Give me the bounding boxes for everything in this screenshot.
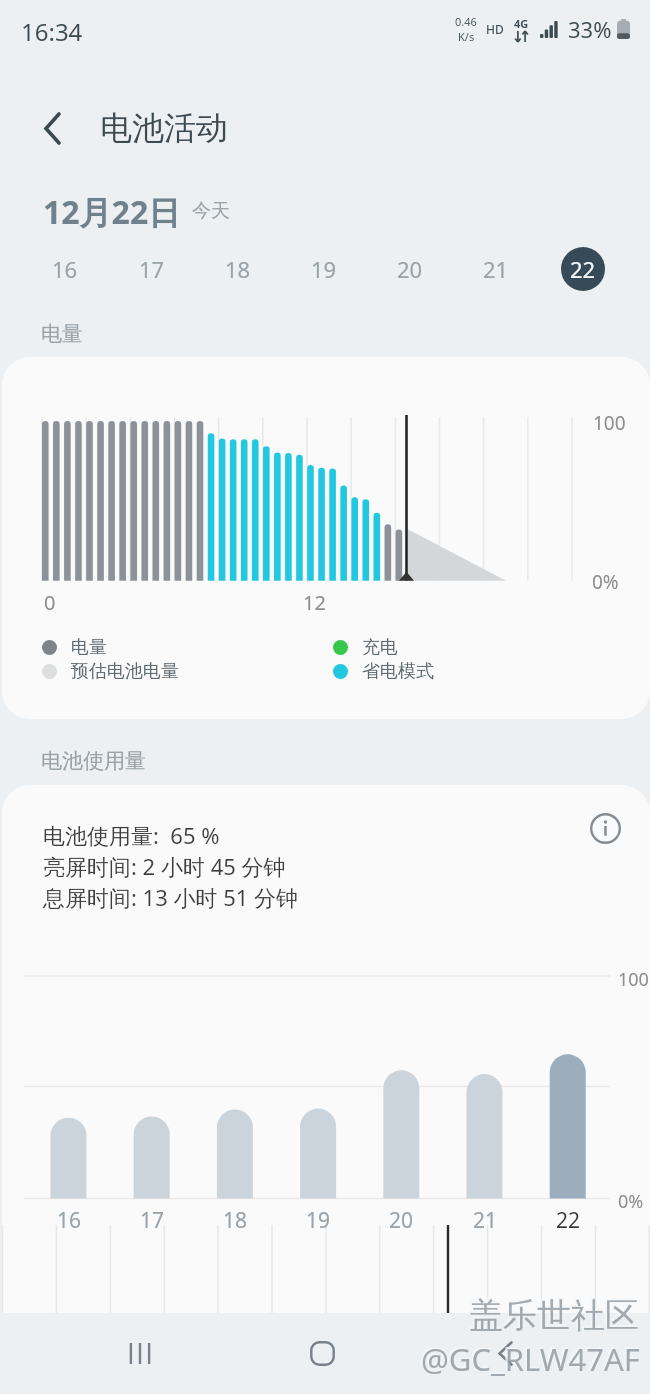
staticText: 20 <box>389 1206 414 1235</box>
staticText: 12 <box>303 589 326 616</box>
staticText: 今天 <box>192 199 230 223</box>
staticText: K/s <box>458 29 475 44</box>
staticText: 电池使用量 <box>41 748 146 774</box>
staticText: 100 <box>618 967 649 992</box>
staticText: 19 <box>306 1206 331 1235</box>
button[interactable]: 16 <box>43 247 87 291</box>
staticText: 盖乐世社区 <box>469 1294 639 1337</box>
staticText: 17 <box>139 254 165 284</box>
staticText: 18 <box>223 1206 248 1235</box>
staticText: 16 <box>57 1206 82 1235</box>
staticText: 0% <box>618 1189 644 1214</box>
staticText: 息屏时间: 13 小时 51 分钟 <box>43 882 299 912</box>
staticText: 12月22日 <box>43 190 181 234</box>
button[interactable]: 20 <box>388 247 432 291</box>
staticText: 18 <box>225 254 251 284</box>
button[interactable]: 18 <box>216 247 260 291</box>
button[interactable]: 17 <box>130 247 174 291</box>
button[interactable]: 22 <box>561 247 605 291</box>
staticText: 电量 <box>71 636 107 659</box>
button[interactable]: Back <box>28 104 76 152</box>
staticText: 电池活动 <box>100 108 228 148</box>
staticText: 19 <box>311 254 337 284</box>
staticText: 0.46 <box>455 14 477 29</box>
staticText: 电池使用量: 65 % <box>43 820 220 850</box>
staticText: 电量 <box>41 321 83 347</box>
staticText: 20 <box>397 254 423 284</box>
staticText: 16 <box>52 254 78 284</box>
staticText: 0 <box>44 589 56 616</box>
staticText: 22 <box>556 1206 581 1235</box>
button[interactable]: 19 <box>302 247 346 291</box>
staticText: 21 <box>483 254 509 284</box>
staticText: 22 <box>570 254 596 284</box>
staticText: 16:34 <box>21 15 83 48</box>
staticText: @GC_RLW47AF <box>419 1336 638 1378</box>
button[interactable]: Home <box>282 1313 362 1394</box>
staticText: HD <box>486 21 504 37</box>
staticText: 17 <box>140 1206 165 1235</box>
staticText: 33% <box>568 14 612 44</box>
staticText: 预估电池电量 <box>71 660 179 683</box>
staticText: 省电模式 <box>362 660 434 683</box>
button[interactable]: Recents <box>100 1313 180 1394</box>
button[interactable]: Back <box>465 1313 545 1394</box>
button[interactable]: 21 <box>474 247 518 291</box>
staticText: 0% <box>592 569 619 595</box>
staticText: @GC_RLW47AF <box>421 1338 640 1380</box>
staticText: 充电 <box>362 636 398 659</box>
button[interactable]: Info <box>583 806 627 850</box>
staticText: 100 <box>593 410 626 436</box>
staticText: 亮屏时间: 2 小时 45 分钟 <box>43 851 286 881</box>
staticText: 21 <box>473 1206 498 1235</box>
staticText: 盖乐世社区 <box>467 1292 637 1335</box>
staticText: 4G <box>514 16 529 31</box>
